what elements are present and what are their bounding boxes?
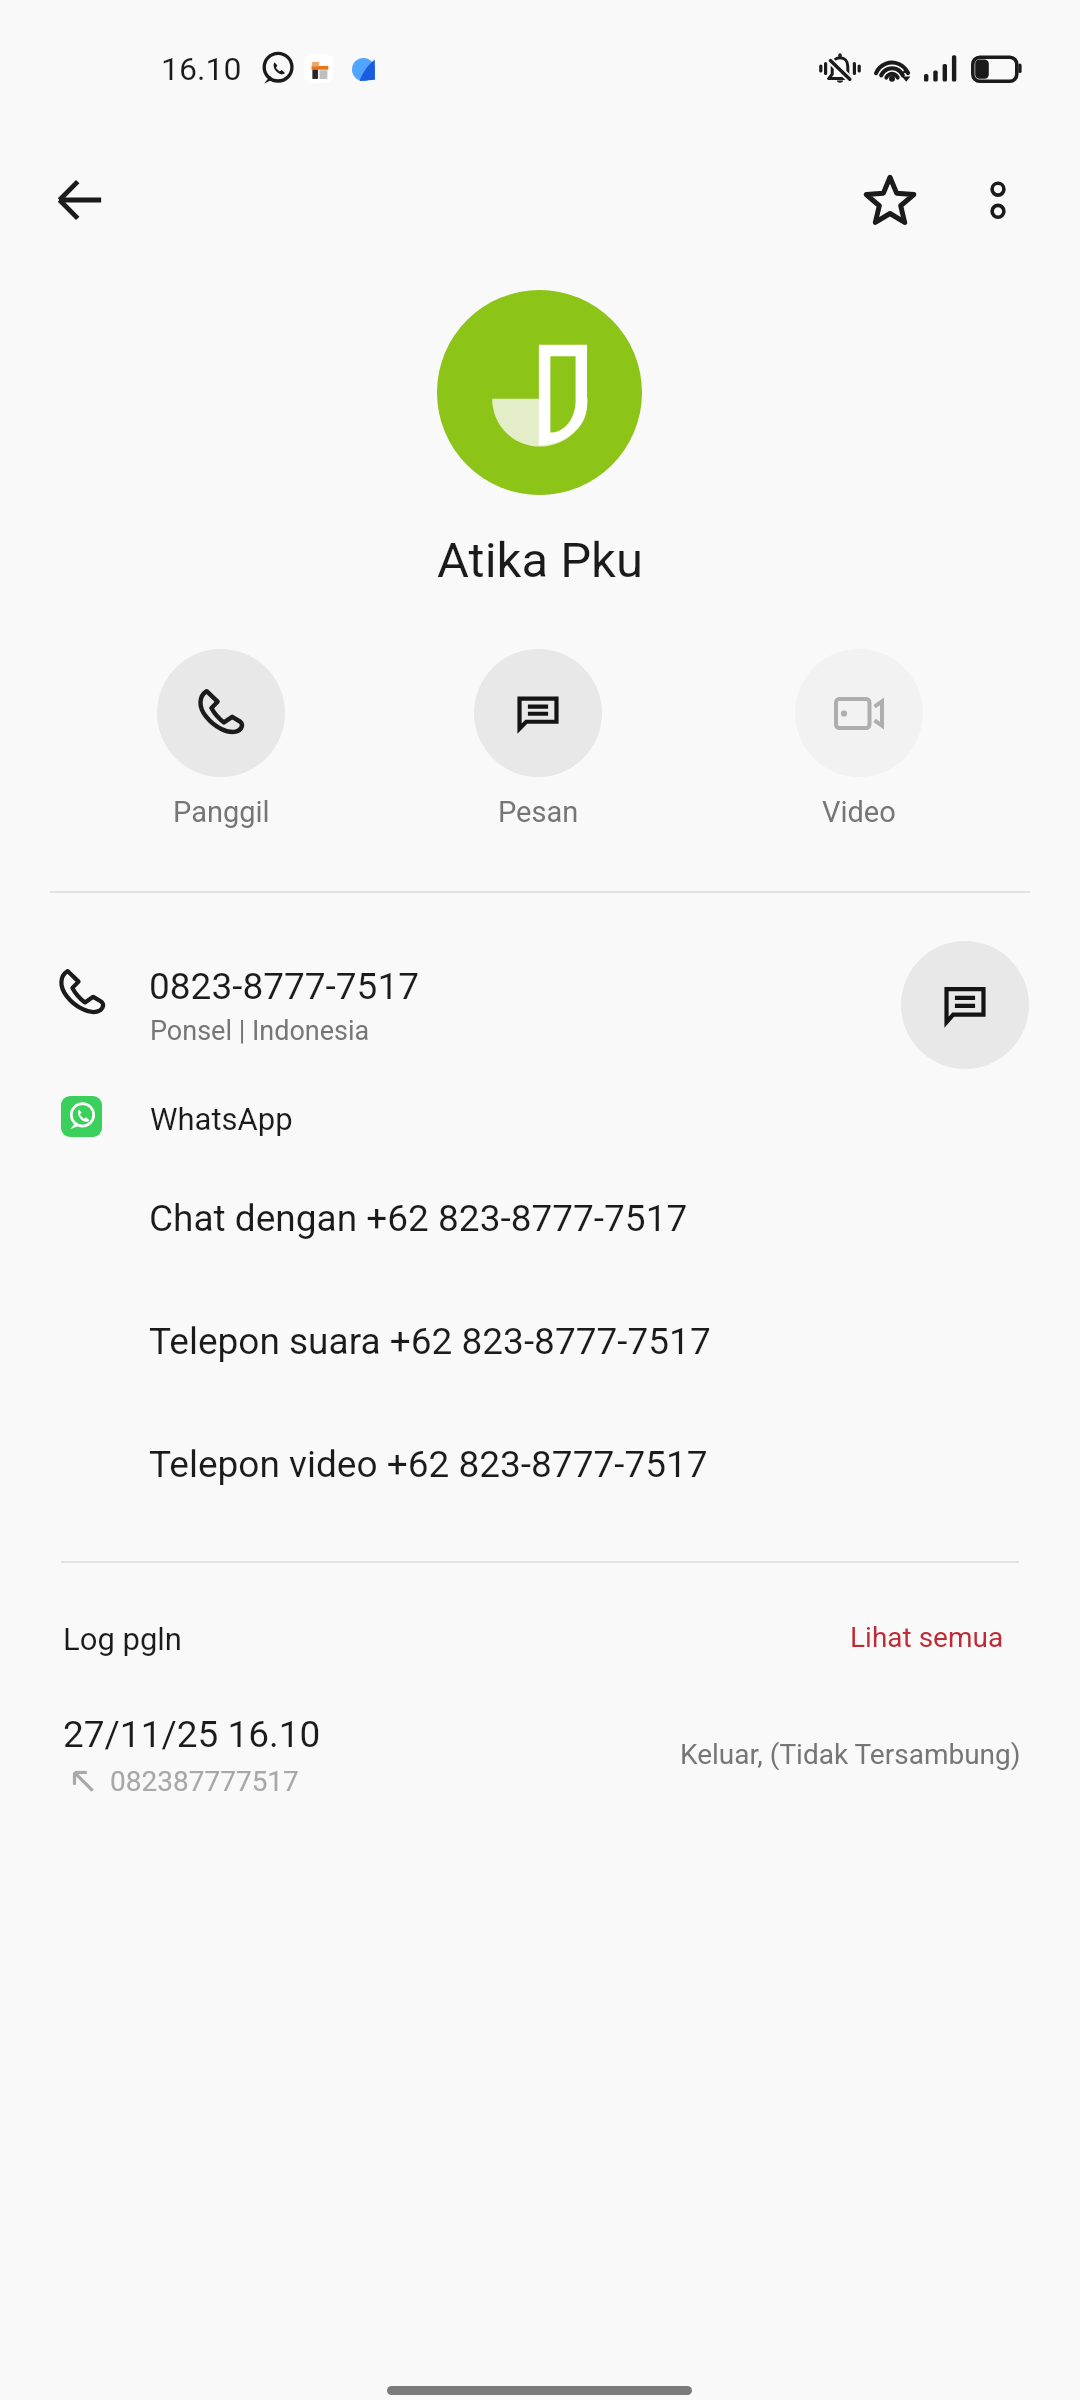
staticText: Telepon suara +62 823-8777-7517 <box>149 1320 711 1363</box>
staticText: Keluar, (Tidak Tersambung) <box>680 1738 1021 1771</box>
staticText: Chat dengan +62 823-8777-7517 <box>149 1197 688 1240</box>
button[interactable]: WhatsApp <box>0 1080 1080 1156</box>
button[interactable]: Back <box>32 152 128 248</box>
button[interactable]: 27/11/25 16.10 <box>0 1700 1080 1820</box>
staticText: Pesan <box>498 795 579 829</box>
staticText: Video <box>822 795 896 829</box>
button[interactable]: Pesan <box>474 649 602 829</box>
button[interactable]: Lihat semua <box>828 1600 1018 1682</box>
staticText: 16.10 <box>161 50 242 88</box>
button[interactable]: Telepon suara +62 823-8777-7517 <box>0 1284 1080 1376</box>
button[interactable]: Send message <box>901 941 1029 1069</box>
staticText: 082387777517 <box>110 1765 299 1798</box>
staticText: Telepon video +62 823-8777-7517 <box>149 1443 708 1486</box>
staticText: Atika Pku <box>0 532 1080 589</box>
staticText: Ponsel | Indonesia <box>150 1015 370 1047</box>
button[interactable]: Chat dengan +62 823-8777-7517 <box>0 1161 1080 1253</box>
staticText: 0823-8777-7517 <box>149 965 419 1008</box>
button[interactable]: Telepon video +62 823-8777-7517 <box>0 1407 1080 1499</box>
staticText: WhatsApp <box>150 1101 293 1137</box>
staticText: 27/11/25 16.10 <box>63 1713 321 1756</box>
staticText: Panggil <box>173 795 270 829</box>
button[interactable]: 0823-8777-7517 <box>0 940 1080 1068</box>
button[interactable]: More options <box>950 152 1046 248</box>
staticText: Lihat semua <box>850 1621 1004 1654</box>
button[interactable]: Add to favourites <box>842 152 938 248</box>
button[interactable]: Video <box>795 649 923 829</box>
staticText: Log pgln <box>63 1621 182 1657</box>
button[interactable]: Panggil <box>157 649 285 829</box>
